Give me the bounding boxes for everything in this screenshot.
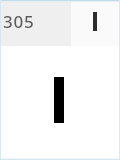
staticText: 305 [3, 10, 35, 33]
button[interactable]: More options [81, 0, 109, 46]
button[interactable]: 305 [0, 0, 71, 46]
